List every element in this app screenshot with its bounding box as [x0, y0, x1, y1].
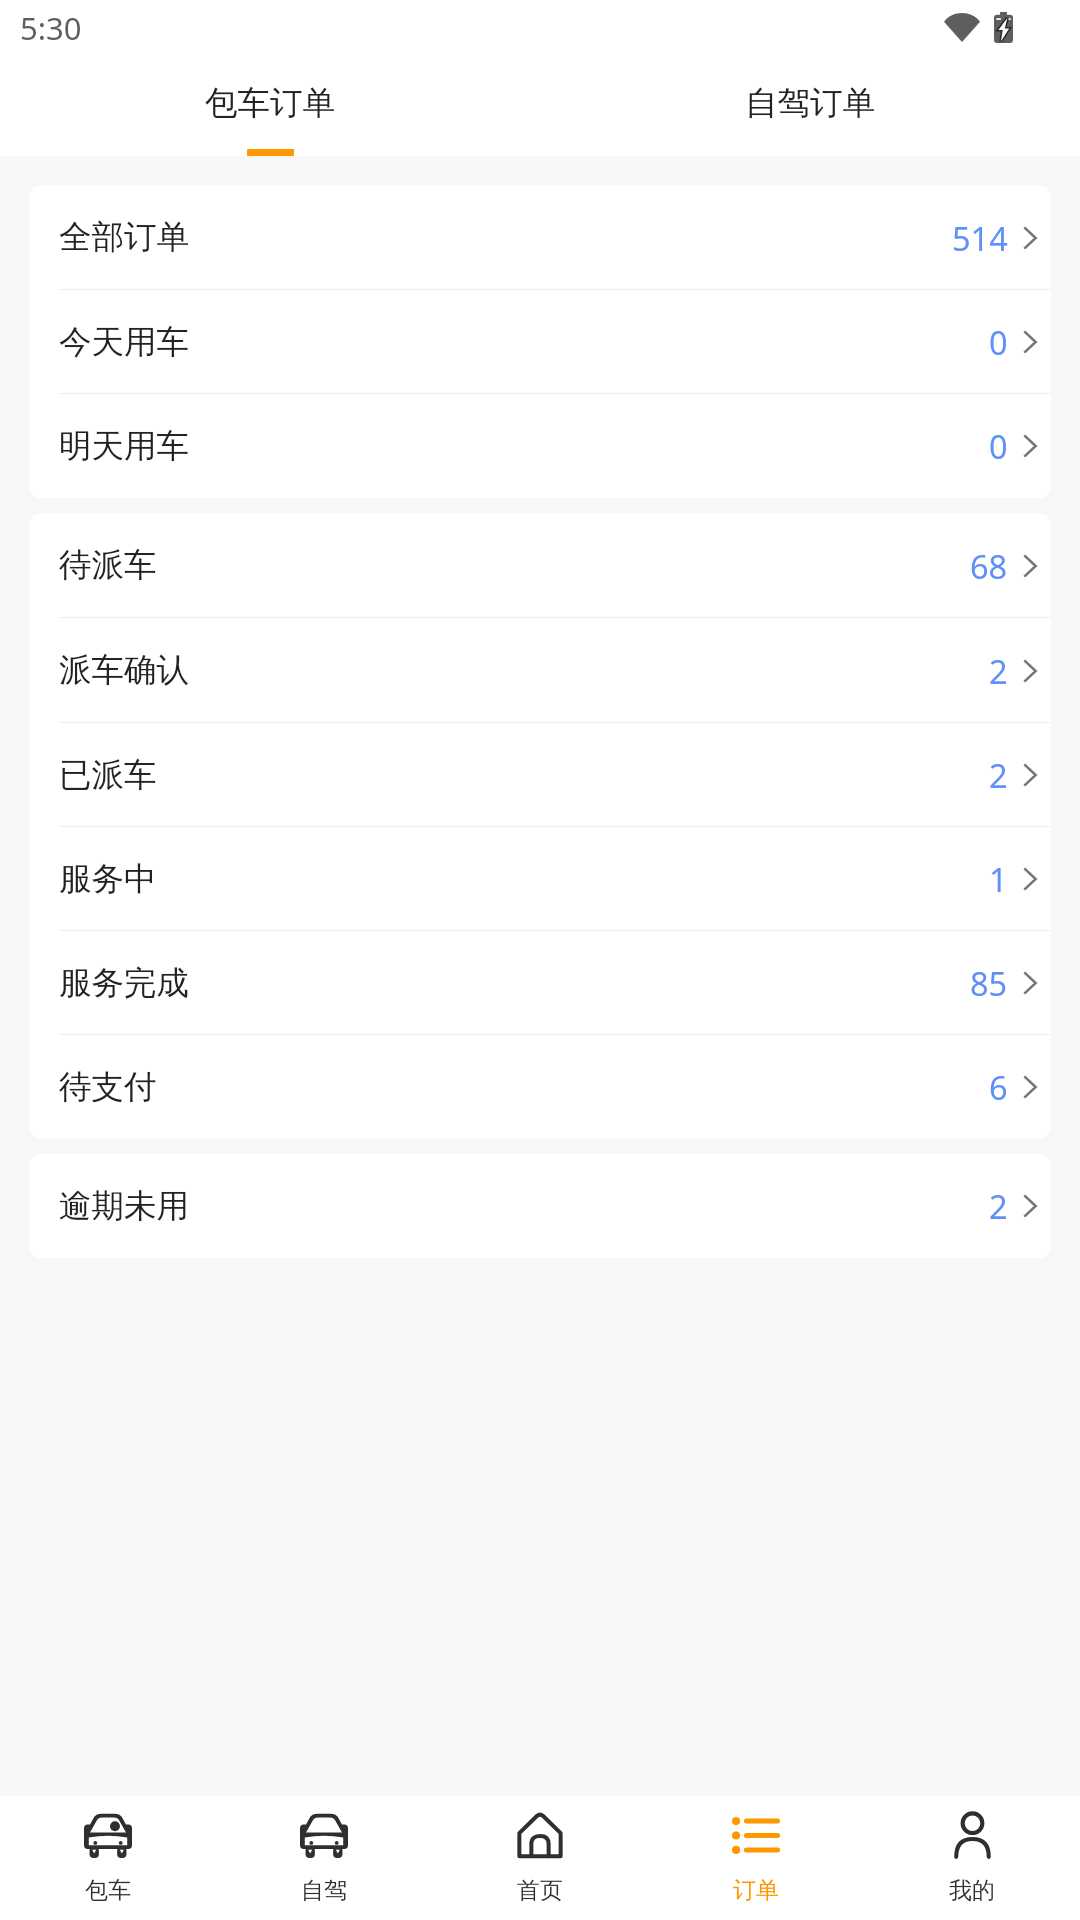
staticText: 已派车: [59, 755, 157, 796]
staticText: 2: [989, 753, 1008, 797]
staticText: 1: [989, 857, 1008, 901]
staticText: 68: [970, 544, 1008, 588]
staticText: 明天用车: [59, 426, 189, 467]
other: Battery charging: [994, 12, 1013, 43]
staticText: 2: [989, 649, 1008, 693]
staticText: 85: [970, 961, 1008, 1005]
button[interactable]: 服务中: [29, 827, 1051, 931]
staticText: 自驾订单: [745, 83, 875, 124]
button[interactable]: 全部订单: [29, 185, 1051, 290]
staticText: 0: [989, 424, 1008, 468]
button[interactable]: 包车订单: [0, 62, 540, 156]
staticText: 2: [989, 1184, 1008, 1228]
staticText: 派车确认: [59, 650, 189, 691]
button[interactable]: Charter: [0, 1796, 216, 1920]
button[interactable]: 明天用车: [29, 394, 1051, 498]
button[interactable]: 今天用车: [29, 290, 1051, 394]
button[interactable]: 自驾订单: [540, 62, 1080, 156]
staticText: 包车订单: [205, 83, 335, 124]
button[interactable]: 服务完成: [29, 931, 1051, 1035]
staticText: 服务完成: [59, 963, 189, 1004]
staticText: 6: [989, 1065, 1008, 1109]
staticText: 5:30: [20, 7, 82, 49]
staticText: 全部订单: [59, 217, 189, 258]
button[interactable]: 待派车: [29, 513, 1051, 618]
button[interactable]: 已派车: [29, 723, 1051, 827]
staticText: 0: [989, 320, 1008, 364]
staticText: 自驾: [301, 1876, 347, 1905]
button[interactable]: 逾期未用: [29, 1154, 1051, 1258]
other: WiFi: [944, 13, 980, 42]
button[interactable]: Home: [432, 1796, 648, 1920]
staticText: 服务中: [59, 859, 157, 900]
staticText: 首页: [517, 1876, 563, 1905]
staticText: 待支付: [59, 1067, 157, 1108]
staticText: 订单: [733, 1876, 779, 1905]
staticText: 逾期未用: [59, 1186, 189, 1227]
button[interactable]: Orders: [648, 1796, 864, 1920]
staticText: 今天用车: [59, 322, 189, 363]
button[interactable]: Self drive: [216, 1796, 432, 1920]
button[interactable]: 派车确认: [29, 618, 1051, 723]
button[interactable]: Mine: [864, 1796, 1080, 1920]
staticText: 我的: [949, 1876, 995, 1905]
staticText: 514: [952, 216, 1008, 260]
staticText: 包车: [85, 1876, 131, 1905]
button[interactable]: 待支付: [29, 1035, 1051, 1139]
staticText: 待派车: [59, 545, 157, 586]
